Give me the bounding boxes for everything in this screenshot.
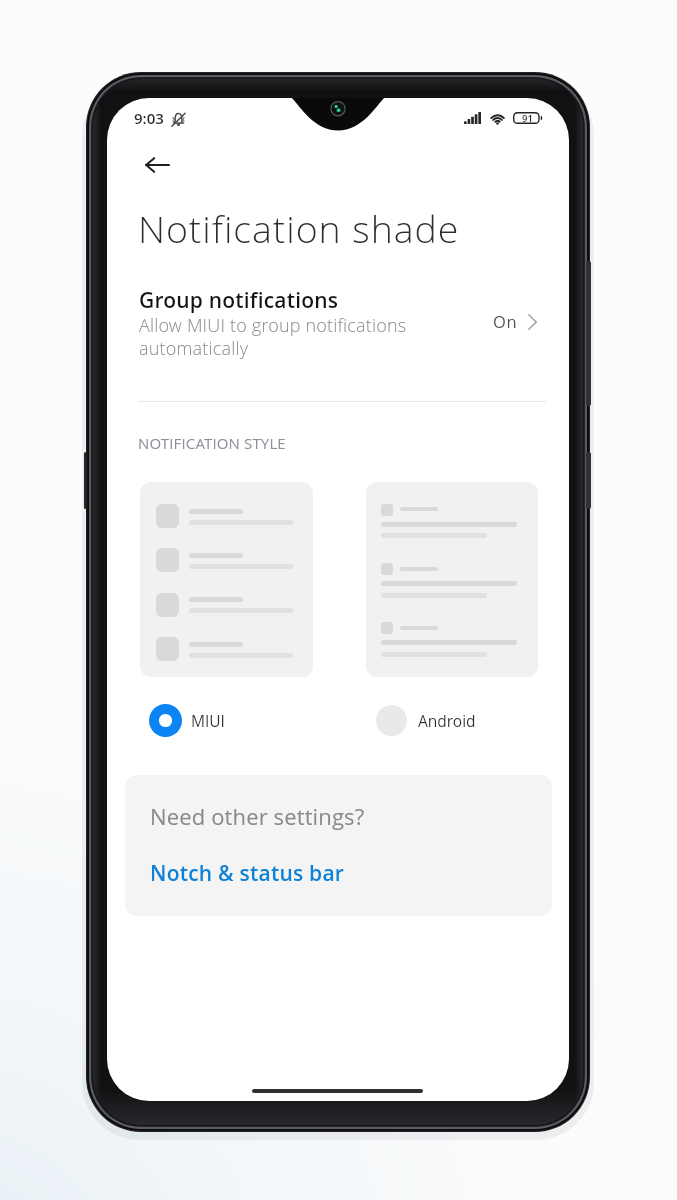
staticText: 9:03: [134, 108, 164, 128]
button[interactable]: [131, 282, 551, 364]
staticText: Android: [418, 710, 476, 731]
staticText: Notification shade: [138, 203, 460, 254]
staticText: NOTIFICATION STYLE: [138, 433, 286, 453]
staticText: Group notifications: [139, 286, 339, 315]
staticText: Allow MIUI to group notifications automa…: [139, 313, 407, 360]
button[interactable]: MIUI: [149, 702, 267, 738]
button[interactable]: Notch & status bar: [150, 859, 345, 888]
button[interactable]: [140, 482, 313, 677]
staticText: MIUI: [191, 710, 225, 731]
staticText: On: [493, 310, 518, 332]
button[interactable]: [366, 482, 538, 677]
button[interactable]: Back: [133, 141, 181, 189]
staticText: Need other settings?: [150, 801, 365, 831]
button[interactable]: Android: [376, 703, 504, 738]
staticText: 91: [522, 112, 533, 125]
